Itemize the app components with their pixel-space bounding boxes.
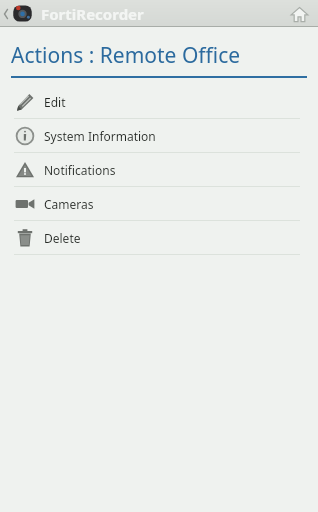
button[interactable]: Notifications (0, 153, 318, 186)
button[interactable]: Home (280, 3, 318, 25)
staticText: FortiRecorder (41, 4, 144, 24)
button[interactable]: Up (0, 3, 35, 24)
staticText: Edit (44, 94, 66, 110)
staticText: Notifications (44, 162, 116, 178)
staticText: Cameras (44, 196, 94, 212)
staticText: Actions : Remote Office (11, 41, 241, 70)
button[interactable]: Cameras (0, 187, 318, 220)
button[interactable]: System Information (0, 119, 318, 152)
button[interactable]: Delete (0, 221, 318, 254)
staticText: System Information (44, 128, 156, 144)
staticText: Delete (44, 230, 81, 246)
button[interactable]: Edit (0, 85, 318, 118)
